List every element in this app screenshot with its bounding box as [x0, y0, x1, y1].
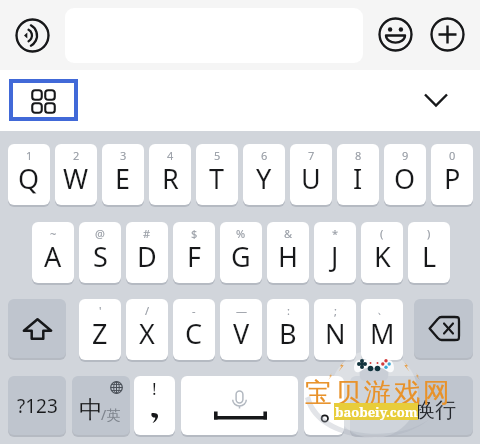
button[interactable] [304, 376, 344, 435]
staticText: ) [427, 226, 431, 241]
button[interactable]: & [267, 222, 309, 283]
staticText: # [143, 226, 151, 241]
staticText: O [394, 160, 416, 197]
staticText: & [284, 226, 293, 241]
button[interactable]: 、 [361, 299, 403, 360]
button[interactable]: 3 [102, 144, 144, 205]
staticText: R [162, 160, 179, 197]
staticText: N [325, 315, 346, 352]
button[interactable]: 5 [196, 144, 238, 205]
staticText: /英 [101, 405, 121, 424]
button[interactable]: $ [173, 222, 215, 283]
button[interactable]: ?123 [8, 376, 66, 435]
button[interactable]: Apps [9, 79, 78, 121]
staticText: Q [18, 160, 40, 197]
button[interactable]: @ [79, 222, 121, 283]
staticText: ( [380, 226, 384, 241]
button[interactable]: 2 [55, 144, 97, 205]
staticText: : [287, 303, 290, 318]
staticText: ! [152, 377, 157, 400]
staticText: % [236, 226, 246, 241]
staticText: G [231, 238, 251, 275]
button[interactable]: Voice input [15, 18, 50, 53]
staticText: 6 [261, 148, 268, 163]
button[interactable]: 4 [149, 144, 191, 205]
staticText: ~ [50, 226, 57, 241]
staticText: H [278, 238, 299, 275]
button[interactable]: ) [408, 222, 450, 283]
staticText: @ [95, 226, 105, 241]
staticText: U [301, 160, 321, 197]
staticText: 中 [79, 395, 103, 425]
staticText: * [332, 226, 339, 241]
button[interactable]: Emoji [378, 17, 413, 52]
staticText: S [93, 238, 108, 275]
button[interactable]: ' [79, 299, 121, 360]
button[interactable]: # [126, 222, 168, 283]
staticText: D [137, 238, 157, 275]
button[interactable]: - [173, 299, 215, 360]
staticText: A [44, 238, 62, 275]
staticText: 、 [377, 303, 388, 317]
staticText: C [185, 315, 203, 352]
staticText: — [236, 303, 247, 318]
staticText: L [422, 238, 437, 275]
staticText: I [353, 160, 363, 197]
staticText: 9 [402, 148, 409, 163]
staticText: M [370, 315, 395, 352]
staticText: Z [92, 315, 108, 352]
staticText: 7 [308, 148, 315, 163]
button[interactable] [414, 299, 473, 358]
button[interactable]: ; [314, 299, 356, 360]
button[interactable]: ~ [32, 222, 74, 283]
staticText: 3 [120, 148, 127, 163]
staticText: T [209, 160, 225, 197]
staticText: / [145, 303, 150, 318]
staticText: 8 [355, 148, 362, 163]
staticText: W [63, 160, 89, 197]
button[interactable]: 0 [431, 144, 473, 205]
staticText: $ [191, 226, 198, 241]
button[interactable]: 换行 [350, 376, 473, 435]
staticText: ?123 [17, 393, 58, 419]
staticText: X [139, 315, 155, 352]
staticText: Y [256, 160, 272, 197]
button[interactable]: 6 [243, 144, 285, 205]
staticText: B [279, 315, 297, 352]
button[interactable]: 7 [290, 144, 332, 205]
button[interactable]: : [267, 299, 309, 360]
button[interactable]: ( [361, 222, 403, 283]
staticText: ' [99, 303, 102, 318]
staticText: K [374, 238, 391, 275]
staticText: 4 [167, 148, 174, 163]
staticText: baobeiy.com [335, 403, 418, 420]
button[interactable]: / [126, 299, 168, 360]
button[interactable]: 9 [384, 144, 426, 205]
staticText: 2 [73, 148, 80, 163]
button[interactable]: % [220, 222, 262, 283]
button[interactable]: — [220, 299, 262, 360]
staticText: ; [334, 303, 337, 318]
staticText: 5 [214, 148, 221, 163]
staticText: V [233, 315, 250, 352]
staticText: 1 [26, 148, 33, 163]
button[interactable] [8, 299, 66, 358]
button[interactable]: Add [430, 17, 465, 52]
staticText: 宝贝游戏网 [305, 376, 453, 410]
button[interactable]: Collapse [418, 82, 454, 118]
button[interactable]: 8 [337, 144, 379, 205]
staticText: - [192, 303, 196, 318]
staticText: F [187, 238, 202, 275]
staticText: J [331, 238, 339, 275]
staticText: 换行 [414, 397, 456, 423]
button[interactable]: * [314, 222, 356, 283]
button[interactable]: 1 [8, 144, 50, 205]
staticText: E [115, 160, 131, 197]
button[interactable]: 中 [72, 376, 130, 435]
staticText: P [444, 160, 461, 197]
button[interactable] [181, 376, 298, 435]
staticText: 0 [449, 148, 456, 163]
button[interactable]: ! [134, 376, 175, 435]
